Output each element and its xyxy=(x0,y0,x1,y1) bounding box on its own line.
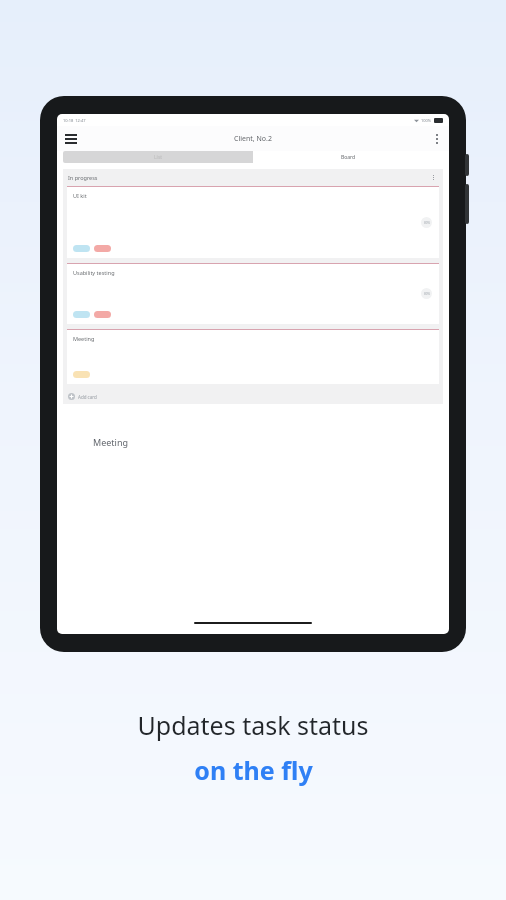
staticText: In progress xyxy=(68,174,98,181)
staticText: Meeting xyxy=(73,335,95,342)
staticText: List xyxy=(154,154,163,161)
button[interactable]: Board xyxy=(253,151,443,163)
staticText: Usability testing xyxy=(73,269,115,276)
button[interactable]: Menu xyxy=(63,131,79,147)
button[interactable]: Meeting xyxy=(67,329,439,384)
staticText: on the fly xyxy=(194,753,313,787)
button[interactable]: Column options xyxy=(429,173,438,182)
staticText: Updates task status xyxy=(137,708,369,742)
button[interactable]: Add card xyxy=(68,389,438,404)
staticText: 100% xyxy=(421,118,432,123)
staticText: 80% xyxy=(424,292,430,296)
staticText: Board xyxy=(341,154,356,161)
staticText: 10:18 12:47 xyxy=(63,118,86,123)
staticText: 80% xyxy=(424,221,430,225)
staticText: UI kit xyxy=(73,192,87,199)
button[interactable]: UI kit xyxy=(67,186,439,258)
staticText: Meeting xyxy=(93,436,128,448)
button[interactable]: More options xyxy=(431,133,442,144)
staticText: Client, No.2 xyxy=(234,134,272,144)
button[interactable]: Usability testing xyxy=(67,263,439,324)
staticText: Add card xyxy=(78,394,97,400)
